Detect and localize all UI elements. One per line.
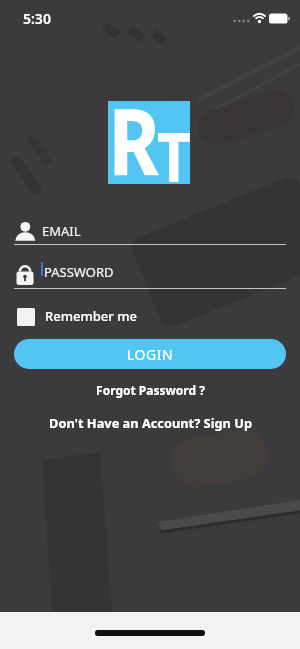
staticText: PASSWORD: [44, 263, 114, 281]
button[interactable]: PASSWORD: [14, 260, 286, 289]
button[interactable]: LOGIN: [14, 339, 286, 369]
button[interactable]: EMAIL: [14, 216, 286, 245]
button[interactable]: Remember me: [14, 304, 194, 328]
staticText: Remember me: [45, 307, 137, 325]
button[interactable]: Forgot Password ?: [0, 380, 300, 400]
staticText: 5:30: [23, 9, 51, 28]
staticText: EMAIL: [42, 222, 81, 240]
staticText: LOGIN: [127, 345, 174, 364]
button[interactable]: Don't Have an Account? Sign Up: [0, 412, 300, 432]
staticText: T: [157, 109, 191, 202]
staticText: Don't Have an Account? Sign Up: [49, 414, 252, 431]
staticText: R: [108, 76, 161, 175]
staticText: Forgot Password ?: [96, 382, 205, 398]
